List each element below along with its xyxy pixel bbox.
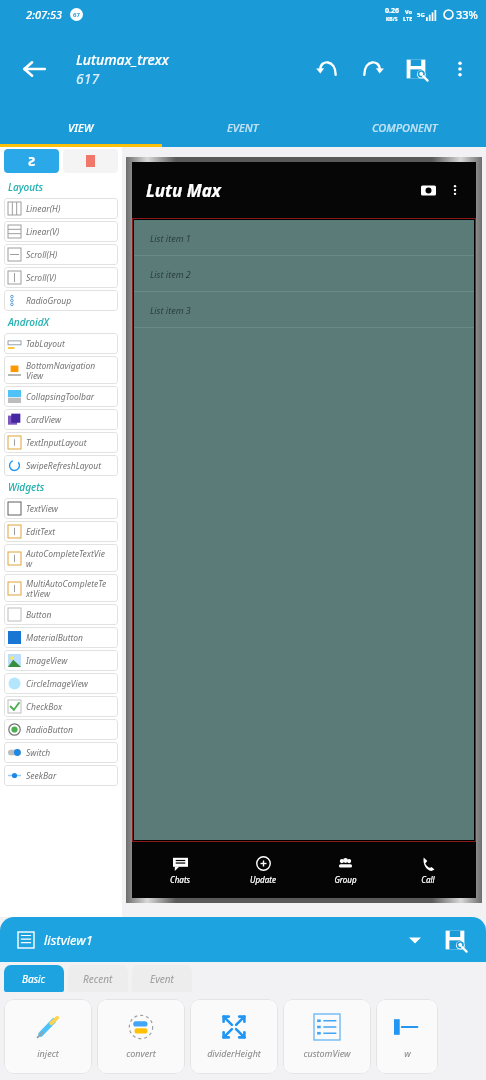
staticText: Layouts bbox=[8, 180, 44, 194]
staticText: Linear(V) bbox=[26, 226, 60, 238]
staticText: SwipeRefreshLayout bbox=[26, 460, 102, 472]
button[interactable]: SwipeRefreshLayout bbox=[4, 455, 118, 476]
button[interactable]: Group bbox=[310, 852, 380, 889]
staticText: CollapsingToolbar bbox=[26, 391, 95, 403]
button[interactable]: More options bbox=[438, 47, 482, 91]
button[interactable]: TextInputLayout bbox=[4, 432, 118, 453]
button[interactable]: Camera bbox=[414, 176, 442, 204]
staticText: customView bbox=[303, 1047, 351, 1059]
staticText: CardView bbox=[26, 414, 62, 426]
button[interactable]: RadioButton bbox=[4, 719, 118, 740]
staticText: 0.26 bbox=[385, 6, 399, 16]
staticText: Basic bbox=[22, 972, 46, 986]
button[interactable]: EVENT bbox=[162, 110, 324, 144]
button[interactable]: List item 2 bbox=[134, 256, 474, 292]
staticText: Ƨ bbox=[28, 152, 36, 170]
staticText: List item 3 bbox=[150, 304, 191, 316]
button[interactable]: convert bbox=[97, 999, 185, 1074]
staticText: RadioButton bbox=[26, 724, 73, 736]
staticText: MaterialButton bbox=[26, 632, 84, 644]
staticText: Button bbox=[26, 609, 52, 621]
staticText: SeekBar bbox=[26, 770, 57, 782]
button[interactable]: inject bbox=[4, 999, 92, 1074]
button[interactable]: Undo bbox=[306, 47, 350, 91]
button[interactable]: CollapsingToolbar bbox=[4, 386, 118, 407]
button[interactable]: Chats bbox=[145, 852, 215, 889]
staticText: CheckBox bbox=[26, 701, 63, 713]
button[interactable]: Scroll(H) bbox=[4, 244, 118, 265]
staticText: Chats bbox=[170, 874, 190, 885]
button[interactable]: customView bbox=[283, 999, 371, 1074]
button[interactable]: Back bbox=[12, 47, 56, 91]
button[interactable]: More options bbox=[442, 177, 468, 203]
button[interactable]: BottomNavigation View bbox=[4, 356, 118, 384]
button[interactable]: CircleImageView bbox=[4, 673, 118, 694]
button[interactable]: ImageView bbox=[4, 650, 118, 671]
staticText: EVENT bbox=[227, 120, 259, 135]
button[interactable]: Update bbox=[228, 852, 298, 889]
staticText: COMPONENT bbox=[372, 120, 438, 135]
button[interactable]: Linear(H) bbox=[4, 198, 118, 219]
button[interactable]: Select view bbox=[402, 927, 428, 953]
button[interactable]: VIEW bbox=[0, 110, 162, 144]
button[interactable]: CardView bbox=[4, 409, 118, 430]
staticText: Group bbox=[334, 874, 357, 885]
button[interactable]: EditText bbox=[4, 521, 118, 542]
staticText: Lutumax_trexx bbox=[76, 50, 169, 69]
staticText: Vo bbox=[405, 8, 412, 15]
staticText: Lutu Max bbox=[146, 179, 221, 202]
button[interactable]: w bbox=[376, 999, 438, 1074]
staticText: RadioGroup bbox=[26, 295, 72, 307]
button[interactable]: dividerHeight bbox=[190, 999, 278, 1074]
staticText: 2:07:53 bbox=[26, 7, 63, 22]
button[interactable]: MaterialButton bbox=[4, 627, 118, 648]
staticText: BottomNavigation View bbox=[26, 360, 96, 381]
button[interactable]: MultiAutoCompleteTe xtView bbox=[4, 574, 118, 602]
staticText: TextView bbox=[26, 503, 58, 515]
staticText: 33% bbox=[456, 7, 478, 22]
button[interactable]: Event bbox=[132, 965, 192, 992]
button[interactable]: Palette bbox=[4, 149, 59, 173]
button[interactable]: RadioGroup bbox=[4, 290, 118, 311]
button[interactable]: Switch bbox=[4, 742, 118, 763]
button[interactable]: Scroll(V) bbox=[4, 267, 118, 288]
staticText: List item 2 bbox=[150, 268, 191, 280]
button[interactable]: TabLayout bbox=[4, 333, 118, 354]
staticText: VIEW bbox=[68, 120, 94, 135]
staticText: Scroll(V) bbox=[26, 272, 57, 284]
button[interactable]: SeekBar bbox=[4, 765, 118, 786]
staticText: 67 bbox=[73, 11, 80, 19]
staticText: 617 bbox=[76, 69, 100, 88]
staticText: Switch bbox=[26, 747, 51, 759]
button[interactable]: Basic bbox=[4, 965, 64, 992]
staticText: List item 1 bbox=[150, 232, 191, 244]
button[interactable]: Redo bbox=[350, 47, 394, 91]
staticText: AndroidX bbox=[8, 315, 50, 329]
button[interactable]: Save bbox=[438, 923, 472, 957]
staticText: TabLayout bbox=[26, 338, 65, 350]
staticText: MultiAutoCompleteTe xtView bbox=[26, 578, 107, 599]
button[interactable]: Linear(V) bbox=[4, 221, 118, 242]
button[interactable]: Call bbox=[393, 852, 463, 889]
staticText: Recent bbox=[83, 972, 113, 986]
button[interactable]: COMPONENT bbox=[324, 110, 486, 144]
button[interactable]: List item 1 bbox=[134, 220, 474, 256]
staticText: AutoCompleteTextVie w bbox=[26, 548, 105, 569]
button[interactable]: List item 3 bbox=[134, 292, 474, 328]
staticText: dividerHeight bbox=[207, 1047, 261, 1059]
button[interactable]: Favorites bbox=[63, 149, 118, 173]
staticText: listview1 bbox=[44, 931, 93, 949]
staticText: EditText bbox=[26, 526, 56, 538]
button[interactable]: AutoCompleteTextVie w bbox=[4, 544, 118, 572]
staticText: 5G bbox=[417, 11, 425, 19]
button[interactable]: TextView bbox=[4, 498, 118, 519]
staticText: convert bbox=[126, 1047, 156, 1059]
staticText: LTE bbox=[403, 15, 413, 22]
button[interactable]: Button bbox=[4, 604, 118, 625]
staticText: w bbox=[404, 1047, 411, 1059]
staticText: TextInputLayout bbox=[26, 437, 87, 449]
button[interactable]: Recent bbox=[68, 965, 128, 992]
button[interactable]: CheckBox bbox=[4, 696, 118, 717]
staticText: Update bbox=[250, 874, 276, 885]
button[interactable]: Save bbox=[394, 47, 438, 91]
